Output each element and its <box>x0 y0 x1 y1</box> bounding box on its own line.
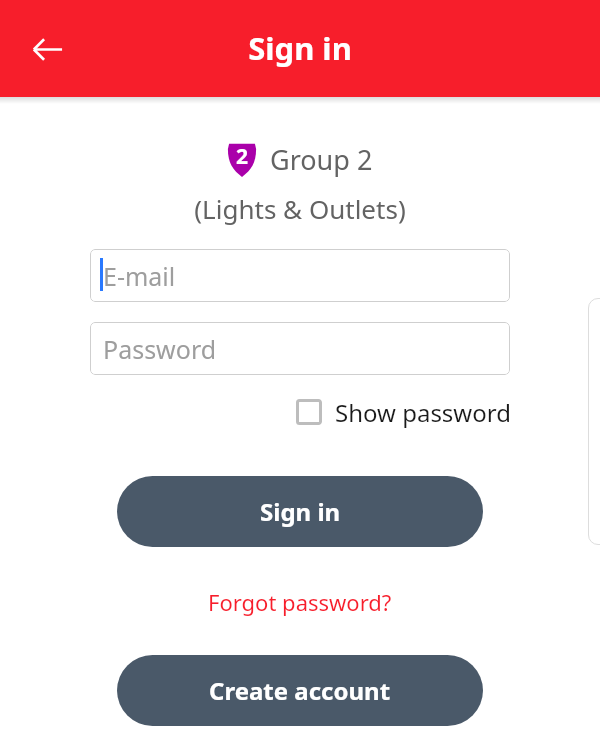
staticText: (Lights & Outlets) <box>0 191 600 226</box>
staticText: Forgot password? <box>208 587 392 617</box>
button[interactable]: Create account <box>117 655 483 726</box>
staticText: Show password <box>335 396 511 429</box>
button[interactable]: E-mail <box>90 249 510 302</box>
staticText: Group 2 <box>270 141 373 177</box>
button[interactable]: Password <box>90 322 510 375</box>
staticText: E-mail <box>103 259 176 293</box>
button[interactable]: Sign in <box>117 476 483 547</box>
staticText: Sign in <box>260 495 341 528</box>
staticText: 2 <box>236 142 249 171</box>
staticText: Password <box>103 332 217 366</box>
button[interactable]: Back <box>17 19 77 79</box>
staticText: Sign in <box>0 27 600 69</box>
staticText: Create account <box>209 674 391 707</box>
button[interactable]: Show password <box>296 394 511 430</box>
button[interactable]: Forgot password? <box>180 584 420 620</box>
